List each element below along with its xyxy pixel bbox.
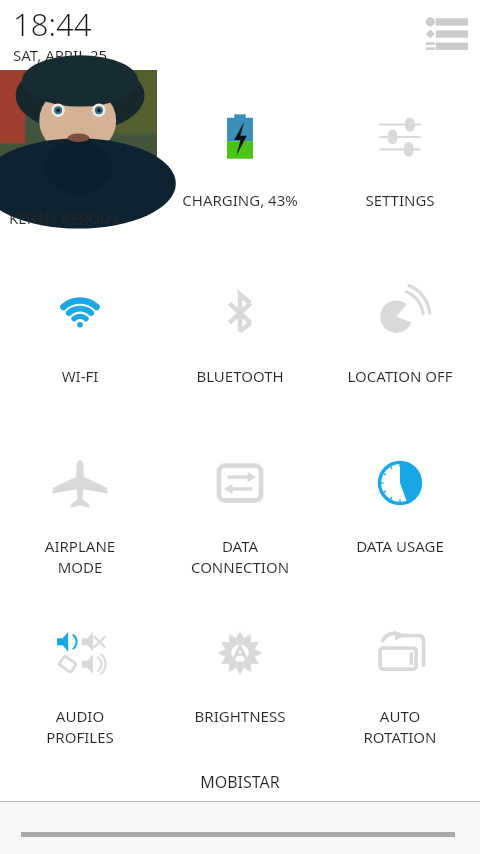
staticText: AUTO ROTATION	[320, 706, 480, 748]
button[interactable]: Edit quick settings	[410, 10, 474, 60]
button[interactable]: Data connection	[160, 418, 320, 588]
staticText: BRIGHTNESS	[160, 706, 320, 726]
button[interactable]: Airplane mode	[0, 418, 160, 588]
staticText: SETTINGS	[320, 190, 480, 210]
staticText: KENNY PERQUY	[9, 208, 120, 228]
button[interactable]: Bluetooth	[160, 248, 320, 418]
button[interactable]: Battery charging 43 percent	[160, 72, 320, 242]
staticText: AUDIO PROFILES	[0, 706, 160, 748]
button[interactable]: Data usage	[320, 418, 480, 588]
button[interactable]: Close panel	[0, 801, 480, 854]
staticText: MOBISTAR	[0, 771, 480, 793]
button[interactable]: Location off	[320, 248, 480, 418]
staticText: WI-FI	[0, 366, 160, 386]
staticText: CHARGING, 43%	[160, 190, 320, 210]
button[interactable]: Brightness	[160, 588, 320, 758]
staticText: LOCATION OFF	[320, 366, 480, 386]
button[interactable]: Wi-Fi	[0, 248, 160, 418]
staticText: DATA CONNECTION	[160, 536, 320, 578]
button[interactable]: Profile photo	[0, 70, 157, 192]
staticText: 18:44	[13, 3, 92, 45]
staticText: DATA USAGE	[320, 536, 480, 556]
button[interactable]: Settings	[320, 72, 480, 242]
button[interactable]: Auto rotation	[320, 588, 480, 758]
button[interactable]: Audio profiles	[0, 588, 160, 758]
staticText: BLUETOOTH	[160, 366, 320, 386]
staticText: SAT, APRIL 25	[13, 45, 108, 65]
staticText: AIRPLANE MODE	[0, 536, 160, 578]
